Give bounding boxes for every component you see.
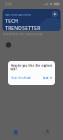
staticText: Latest from the community — [3, 32, 42, 36]
staticText: 9:41 — [5, 1, 12, 7]
button[interactable]: Give feedback — [9, 74, 32, 82]
button[interactable]: Love it — [41, 74, 54, 82]
staticText: Give feedback — [11, 76, 30, 80]
staticText: TRENDSETTER — [5, 24, 40, 31]
staticText: MACHINE LEARNING — [5, 13, 31, 16]
button[interactable]: MACHINE LEARNING — [2, 9, 60, 31]
staticText: How do you like the explore tab? — [10, 64, 52, 71]
staticText: Love it — [43, 76, 52, 80]
button[interactable]: Home — [0, 126, 31, 138]
staticText: TECH — [5, 17, 18, 24]
